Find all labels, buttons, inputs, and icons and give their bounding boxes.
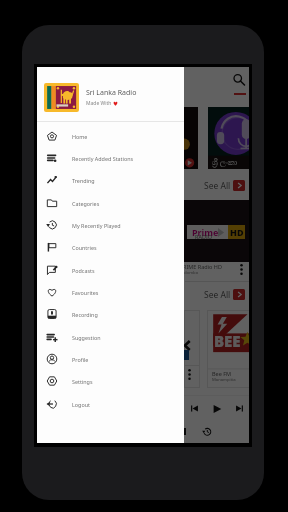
button[interactable]: Trending (37, 169, 184, 191)
staticText: See All (204, 180, 231, 191)
button[interactable]: Previous (190, 404, 199, 413)
button[interactable]: Recording (37, 303, 184, 325)
staticText: Made With (86, 100, 113, 107)
staticText: RIME Radio HD (183, 263, 222, 270)
staticText: BEE (214, 331, 241, 351)
staticText: Categories (72, 200, 100, 207)
staticText: HD (230, 226, 244, 238)
button[interactable]: Podcasts (37, 259, 184, 281)
button[interactable]: Logout (37, 393, 184, 415)
staticText: Countries (72, 244, 97, 251)
button[interactable]: Categories (37, 192, 184, 214)
button[interactable]: Favourites (37, 281, 184, 303)
button[interactable]: See All (204, 289, 245, 300)
button[interactable]: Recently Added Stations (37, 147, 184, 169)
staticText: Sri Lanka Radio (86, 88, 137, 98)
button[interactable]: Countries (37, 236, 184, 258)
button[interactable]: Next (235, 404, 244, 413)
button[interactable]: Search (231, 72, 246, 87)
staticText: Recording (72, 311, 98, 318)
staticText: My Recently Played (72, 222, 121, 229)
staticText: Profile (72, 356, 89, 363)
staticText: Recently Added Stations (72, 155, 134, 162)
staticText: Bee FM (212, 370, 232, 377)
button[interactable]: Profile (37, 348, 184, 370)
staticText: Logout (72, 401, 90, 408)
staticText: ශ්‍රී ලංකා (212, 156, 238, 167)
button[interactable]: Play (211, 403, 223, 415)
staticText: Home (72, 133, 88, 140)
button[interactable]: More options (237, 261, 246, 277)
button[interactable]: Settings (37, 370, 184, 392)
button[interactable]: Recently played (202, 427, 212, 437)
button[interactable]: See All (204, 180, 245, 191)
staticText: Settings (72, 378, 93, 385)
staticText: Trending (72, 177, 95, 184)
button[interactable]: Home (37, 125, 184, 147)
staticText: RADIO (195, 233, 213, 240)
staticText: Manampitia (212, 377, 236, 383)
staticText: Prime (192, 226, 219, 238)
staticText: olombo (183, 270, 199, 276)
staticText: See All (204, 289, 231, 300)
staticText: Podcasts (72, 267, 95, 274)
staticText: Favourites (72, 289, 99, 296)
staticText: Suggestion (72, 334, 101, 341)
button[interactable]: Suggestion (37, 326, 184, 348)
button[interactable]: My Recently Played (37, 214, 184, 236)
